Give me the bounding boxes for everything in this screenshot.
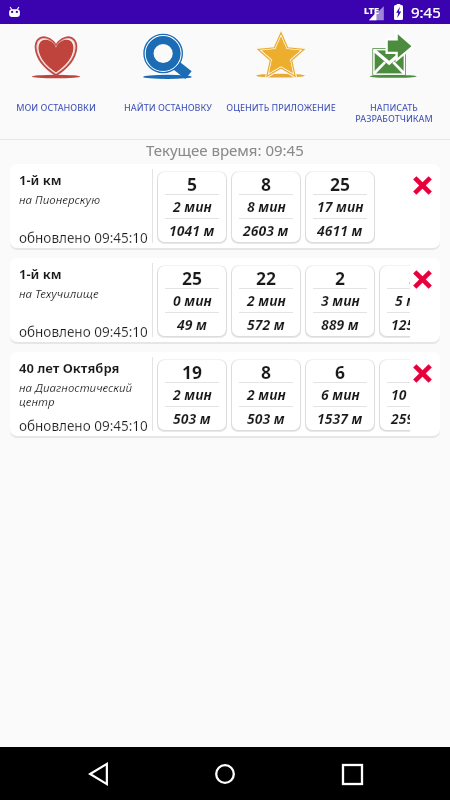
button[interactable]: 2	[306, 266, 374, 336]
staticText: LTE	[364, 4, 380, 16]
button[interactable]: 22	[232, 266, 300, 336]
button[interactable]: НАПИСАТЬ РАЗРАБОТЧИКАМ	[337, 24, 450, 139]
staticText: обновлено 09:45:10	[19, 229, 148, 247]
staticText: 5 мин	[395, 291, 410, 310]
staticText: 1259 м	[391, 315, 410, 334]
button[interactable]: Home	[201, 750, 249, 798]
staticText: 17 мин	[317, 197, 364, 216]
staticText: 1041 м	[169, 221, 215, 240]
staticText: обновлено 09:45:10	[19, 417, 148, 435]
staticText: 22	[256, 266, 277, 288]
staticText: 2599 м	[391, 409, 410, 428]
staticText: обновлено 09:45:10	[19, 323, 148, 341]
staticText: 1537 м	[317, 409, 363, 428]
button[interactable]: 1-й км	[10, 258, 440, 342]
staticText: 503 м	[247, 409, 285, 428]
staticText: 4611 м	[317, 221, 363, 240]
button[interactable]: Recents	[328, 750, 376, 798]
staticText: 2 мин	[247, 385, 286, 404]
staticText: 8 мин	[247, 197, 286, 216]
staticText: Текущее время: 09:45	[146, 140, 304, 160]
button[interactable]: 40 лет Октября	[10, 352, 440, 436]
staticText: 889 м	[321, 315, 359, 334]
staticText: 6	[335, 360, 346, 382]
button[interactable]: МОИ ОСТАНОВКИ	[0, 24, 112, 139]
staticText: 40 лет Октября	[19, 359, 120, 377]
button[interactable]: Удалить остановку	[406, 357, 438, 389]
staticText: 1-й км	[19, 171, 62, 189]
staticText: 2 мин	[173, 385, 212, 404]
button[interactable]: 8	[232, 360, 300, 430]
button[interactable]: ОЦЕНИТЬ ПРИЛОЖЕНИЕ	[224, 24, 337, 139]
staticText: 6 мин	[321, 385, 360, 404]
staticText: 25	[182, 266, 203, 288]
button[interactable]: Удалить остановку	[406, 169, 438, 201]
staticText: 2	[335, 266, 346, 288]
staticText: НАПИСАТЬ РАЗРАБОТЧИКАМ	[355, 101, 433, 125]
staticText: 5	[187, 172, 198, 194]
button[interactable]: Back	[74, 750, 122, 798]
staticText: НАЙТИ ОСТАНОВКУ	[124, 101, 212, 113]
staticText: 19	[182, 360, 203, 382]
button[interactable]: Удалить остановку	[406, 263, 438, 295]
staticText: МОИ ОСТАНОВКИ	[16, 101, 96, 113]
staticText: 8	[261, 172, 272, 194]
button[interactable]: 25	[306, 172, 374, 242]
staticText: на Техучилище	[19, 286, 99, 302]
staticText: 2603 м	[243, 221, 289, 240]
staticText: 25	[330, 172, 351, 194]
button[interactable]: 19	[158, 360, 226, 430]
button[interactable]: 6	[306, 360, 374, 430]
staticText: 8	[261, 360, 272, 382]
button[interactable]: НАЙТИ ОСТАНОВКУ	[112, 24, 224, 139]
staticText: 0 мин	[173, 291, 212, 310]
staticText: 1-й км	[19, 265, 62, 283]
staticText: 3	[409, 266, 410, 288]
staticText: на Пионерскую	[19, 192, 101, 208]
button[interactable]: 5	[158, 172, 226, 242]
button[interactable]: 8	[232, 172, 300, 242]
staticText: 10 мин	[391, 385, 410, 404]
button[interactable]: 3	[380, 266, 410, 336]
button[interactable]: 25	[158, 266, 226, 336]
staticText: 2 мин	[173, 197, 212, 216]
button[interactable]: 1-й км	[10, 164, 440, 248]
staticText: 9:45	[411, 2, 441, 22]
staticText: 49 м	[177, 315, 207, 334]
staticText: 572 м	[247, 315, 285, 334]
button[interactable]: 1	[380, 360, 410, 430]
staticText: ОЦЕНИТЬ ПРИЛОЖЕНИЕ	[226, 101, 336, 113]
staticText: 3 мин	[321, 291, 360, 310]
staticText: 503 м	[173, 409, 211, 428]
staticText: на Диагностический центр	[19, 380, 152, 409]
staticText: 2 мин	[247, 291, 286, 310]
